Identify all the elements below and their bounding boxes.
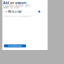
staticText: Pick the service you [3,4,30,7]
staticText: want to link [3,6,19,9]
button[interactable]: Work email [6,10,40,13]
staticText: Add an account [3,1,26,5]
button[interactable]: Continue [4,44,26,47]
staticText: Linked accounts sync automatically here [4,15,32,17]
staticText: Work email [8,10,22,13]
staticText: Continue [8,44,22,48]
